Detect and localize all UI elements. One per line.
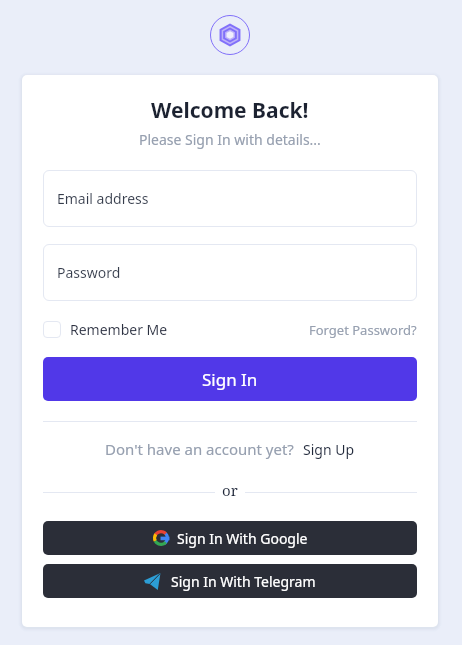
button[interactable]: Sign In With Telegram [43,564,417,598]
button[interactable]: Sign In With Google [43,521,417,555]
button[interactable]: Password [43,244,417,301]
button[interactable]: Remember Me [43,320,168,339]
staticText: Remember Me [70,320,168,339]
staticText: Welcome Back! [151,96,309,125]
other: App logo [210,15,250,55]
button[interactable]: Forget Password? [309,321,417,339]
button[interactable]: Sign Up [303,440,355,459]
staticText: Don't have an account yet? [105,439,294,459]
staticText: or [222,480,238,500]
staticText: Sign In [202,368,258,391]
staticText: Please Sign In with details... [139,130,321,149]
staticText: Sign In With Google [177,529,308,548]
button[interactable]: Sign In [43,357,417,401]
button[interactable]: Email address [43,170,417,227]
staticText: Sign In With Telegram [171,572,316,591]
staticText: Forget Password? [309,321,417,339]
staticText: Email address [57,189,149,208]
staticText: Password [57,263,121,282]
staticText: Sign Up [303,440,355,459]
